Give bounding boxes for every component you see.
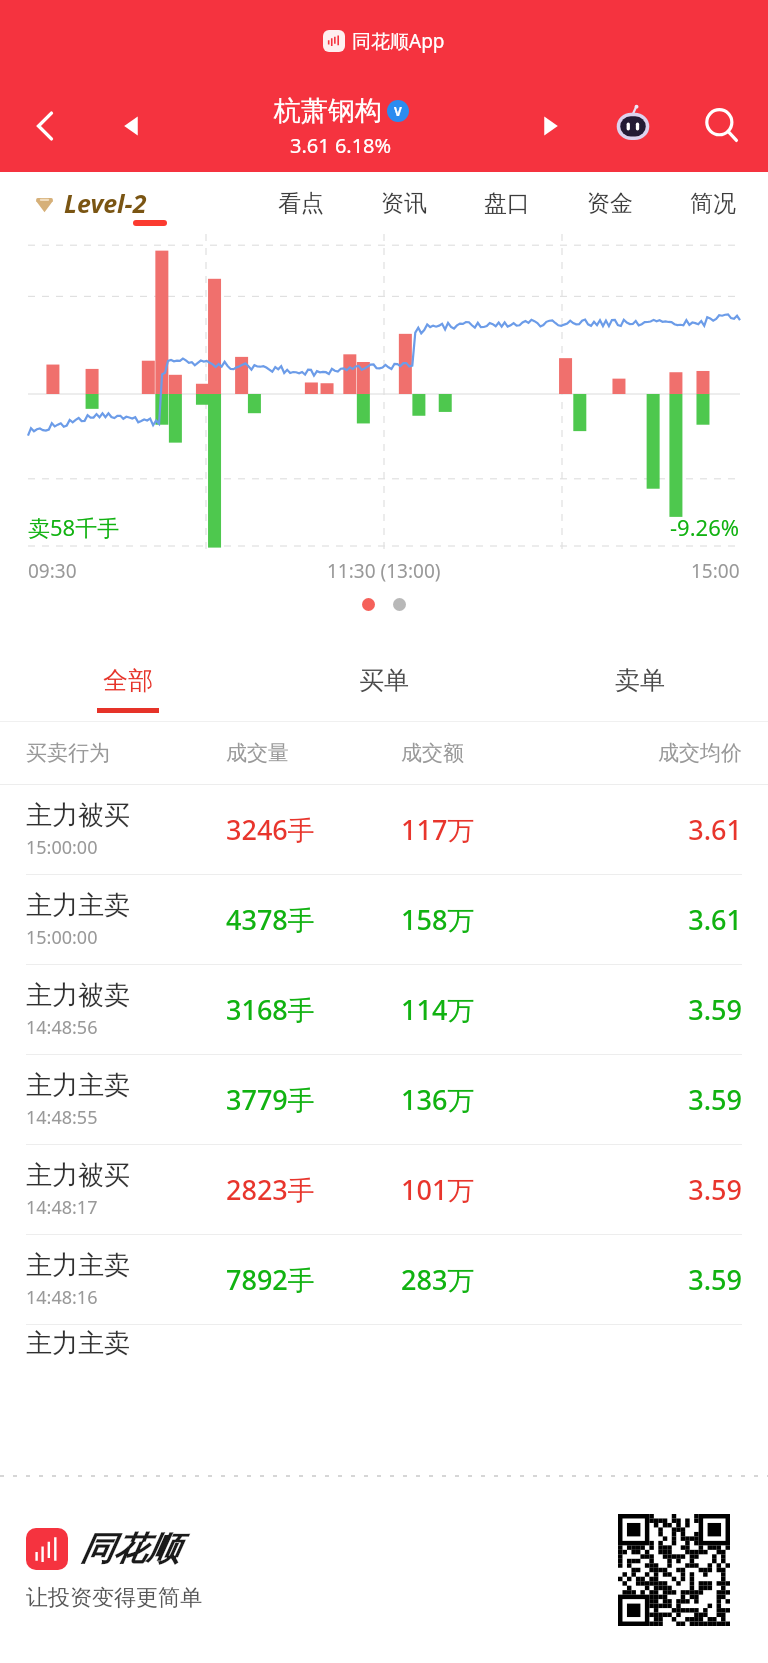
staticText: 成交量: [226, 740, 401, 766]
staticText: 11:30 (13:00): [327, 558, 441, 584]
staticText: 3.59: [567, 1081, 742, 1118]
staticText: 14:48:16: [26, 1285, 98, 1310]
button[interactable]: Previous stock: [92, 80, 172, 172]
button[interactable]: 主力主卖: [0, 1055, 768, 1144]
button[interactable]: 资讯: [352, 172, 455, 234]
staticText: 让投资变得更简单: [26, 1584, 202, 1612]
button[interactable]: 主力主卖: [0, 875, 768, 964]
staticText: 主力主卖: [26, 889, 130, 922]
staticText: 15:00: [691, 558, 740, 584]
staticText: 15:00:00: [26, 925, 98, 950]
button[interactable]: 主力被买: [0, 785, 768, 874]
staticText: 2823手: [226, 1171, 401, 1208]
button[interactable]: 主力主卖: [0, 1235, 768, 1324]
staticText: 资讯: [381, 189, 427, 218]
staticText: 全部: [103, 665, 153, 696]
button[interactable]: Search: [676, 80, 768, 172]
staticText: 简况: [690, 189, 736, 218]
button[interactable]: AI assistant: [590, 80, 676, 172]
staticText: V: [394, 103, 402, 119]
staticText: 158万: [401, 901, 567, 938]
button[interactable]: 看点: [249, 172, 352, 234]
button[interactable]: 资金: [558, 172, 661, 234]
button[interactable]: Back: [0, 80, 92, 172]
staticText: 买单: [359, 665, 409, 696]
staticText: 136万: [401, 1081, 567, 1118]
button[interactable]: 主力被买: [0, 1145, 768, 1234]
staticText: 主力主卖: [26, 1069, 130, 1102]
staticText: 3.61 6.18%: [290, 132, 392, 159]
staticText: 主力被卖: [26, 979, 130, 1012]
staticText: 同花顺App: [352, 28, 445, 54]
staticText: Level-2: [64, 186, 147, 220]
button[interactable]: Next stock: [510, 80, 590, 172]
staticText: 14:48:55: [26, 1105, 98, 1130]
button[interactable]: 简况: [661, 172, 764, 234]
button[interactable]: 买单: [256, 657, 512, 721]
staticText: 主力主卖: [26, 1327, 130, 1360]
staticText: 买卖行为: [26, 740, 226, 766]
staticText: 14:48:56: [26, 1015, 98, 1040]
staticText: -9.26%: [670, 512, 740, 542]
staticText: 同花顺: [80, 1528, 179, 1570]
staticText: 成交均价: [567, 740, 742, 766]
staticText: 主力被买: [26, 1159, 130, 1192]
staticText: 114万: [401, 991, 567, 1028]
staticText: 15:00:00: [26, 835, 98, 860]
staticText: 成交额: [401, 740, 567, 766]
staticText: 283万: [401, 1261, 567, 1298]
button[interactable]: 卖单: [512, 657, 768, 721]
button[interactable]: Level-2: [34, 186, 147, 220]
staticText: 主力主卖: [26, 1249, 130, 1282]
staticText: 4378手: [226, 901, 401, 938]
staticText: 3.59: [567, 1261, 742, 1298]
staticText: 杭萧钢构: [274, 94, 382, 128]
staticText: 看点: [278, 189, 324, 218]
staticText: 117万: [401, 811, 567, 848]
staticText: 卖58千手: [28, 512, 120, 542]
staticText: 卖单: [615, 665, 665, 696]
button[interactable]: 杭萧钢构: [172, 94, 510, 159]
staticText: 101万: [401, 1171, 567, 1208]
button[interactable]: 盘口: [455, 172, 558, 234]
staticText: 3.61: [567, 811, 742, 848]
staticText: 3.61: [567, 901, 742, 938]
staticText: 3246手: [226, 811, 401, 848]
staticText: 7892手: [226, 1261, 401, 1298]
button[interactable]: 全部: [0, 657, 256, 721]
staticText: 14:48:17: [26, 1195, 98, 1220]
staticText: 09:30: [28, 558, 77, 584]
staticText: 盘口: [484, 189, 530, 218]
staticText: 3.59: [567, 1171, 742, 1208]
staticText: 3779手: [226, 1081, 401, 1118]
staticText: 3.59: [567, 991, 742, 1028]
staticText: 资金: [587, 189, 633, 218]
staticText: 主力被买: [26, 799, 130, 832]
button[interactable]: 主力被卖: [0, 965, 768, 1054]
staticText: 3168手: [226, 991, 401, 1028]
